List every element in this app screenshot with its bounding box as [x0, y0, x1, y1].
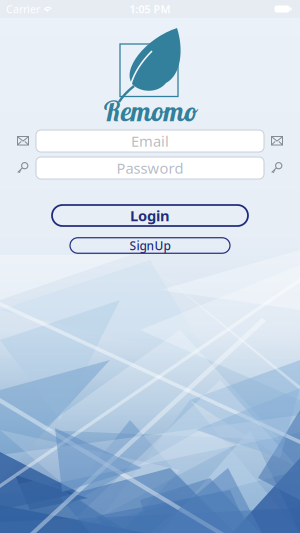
staticText: Remomo [102, 94, 197, 128]
staticText: 1:05 PM [129, 2, 170, 16]
staticText: Carrier [6, 2, 40, 16]
button[interactable]: SignUp [70, 238, 230, 253]
staticText: Password [116, 158, 183, 178]
button[interactable]: Password [36, 157, 264, 179]
button[interactable]: Email [36, 130, 264, 152]
staticText: SignUp [129, 237, 170, 253]
button[interactable]: Login [52, 205, 248, 226]
staticText: Email [131, 131, 169, 151]
staticText: Login [130, 206, 170, 225]
